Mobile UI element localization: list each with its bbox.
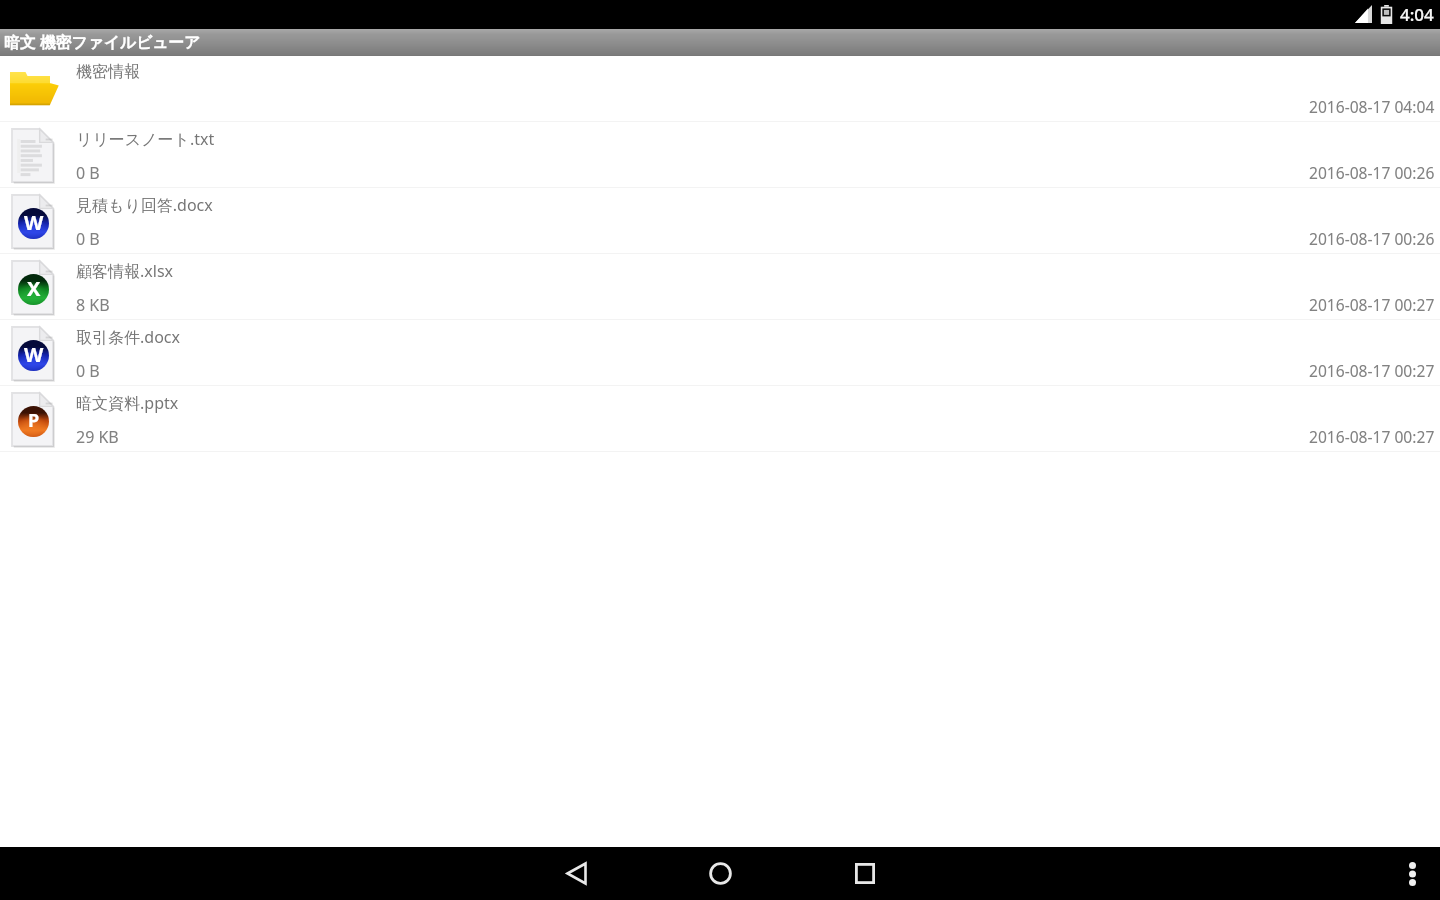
staticText: X [27,275,41,302]
staticText: 暗文 機密ファイルビューア [4,31,201,53]
staticText: 0 B [76,360,100,382]
staticText: 2016-08-17 00:26 [1309,162,1435,183]
staticText: 2016-08-17 00:26 [1309,228,1435,249]
staticText: 29 KB [76,426,119,448]
button[interactable]: More options [1386,847,1438,900]
staticText: W [24,209,44,236]
staticText: リリースノート.txt [76,128,215,150]
staticText: 暗文資料.pptx [76,392,179,414]
button[interactable]: 機密情報 [0,56,1440,122]
button[interactable]: W [0,320,1440,386]
staticText: 8 KB [76,294,110,316]
button[interactable]: P [0,386,1440,452]
staticText: 取引条件.docx [76,326,180,348]
staticText: P [28,408,40,433]
staticText: 2016-08-17 00:27 [1309,294,1435,315]
staticText: 2016-08-17 04:04 [1309,96,1435,117]
button[interactable]: W [0,188,1440,254]
staticText: 2016-08-17 00:27 [1309,360,1435,381]
button[interactable]: Recent apps [839,847,891,900]
staticText: 機密情報 [76,62,140,82]
staticText: 4:04 [1400,3,1434,26]
button[interactable]: Back [550,847,602,900]
staticText: 2016-08-17 00:27 [1309,426,1435,447]
staticText: 0 B [76,228,100,250]
staticText: 顧客情報.xlsx [76,260,174,282]
button[interactable]: X [0,254,1440,320]
staticText: 見積もり回答.docx [76,194,213,216]
button[interactable]: Home [694,847,746,900]
staticText: 0 B [76,162,100,184]
staticText: W [24,341,44,368]
button[interactable]: リリースノート.txt [0,122,1440,188]
